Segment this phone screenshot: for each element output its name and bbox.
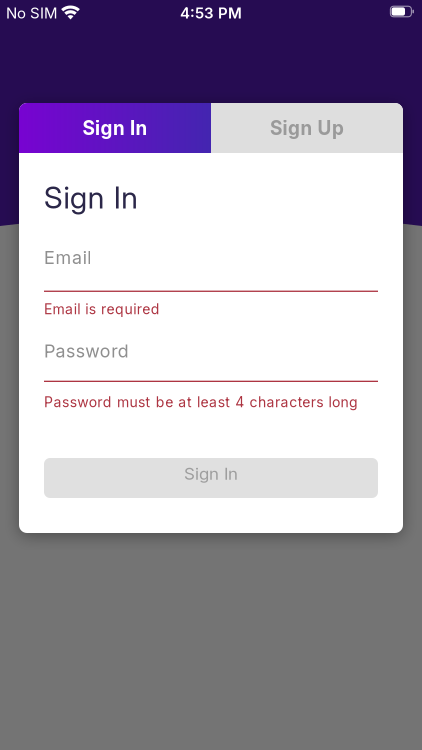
staticText: Password xyxy=(44,340,129,362)
staticText: Sign In xyxy=(44,180,138,215)
staticText: Email xyxy=(44,247,91,268)
button[interactable]: Sign Up xyxy=(211,103,403,153)
button[interactable]: Password xyxy=(44,340,378,382)
button[interactable]: Sign In xyxy=(19,103,211,153)
staticText: Sign In xyxy=(82,117,147,139)
staticText: 4:53 PM xyxy=(180,4,242,22)
button[interactable]: Email xyxy=(44,247,378,292)
staticText: No SIM xyxy=(6,4,58,22)
staticText: Password must be at least 4 characters l… xyxy=(44,394,358,410)
button[interactable]: Sign In xyxy=(44,458,378,498)
staticText: Email is required xyxy=(44,301,160,317)
staticText: Sign Up xyxy=(270,117,344,139)
staticText: Sign In xyxy=(184,463,238,484)
